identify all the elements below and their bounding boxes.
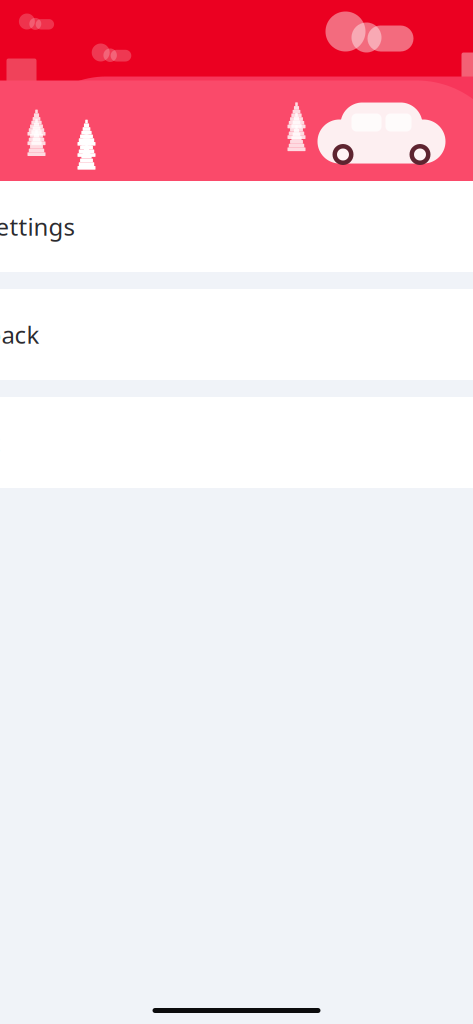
button[interactable]: Feedback [0,289,473,380]
button[interactable]: App Settings [0,181,473,272]
staticText: Feedback [0,319,39,350]
staticText: App Settings [0,211,74,242]
